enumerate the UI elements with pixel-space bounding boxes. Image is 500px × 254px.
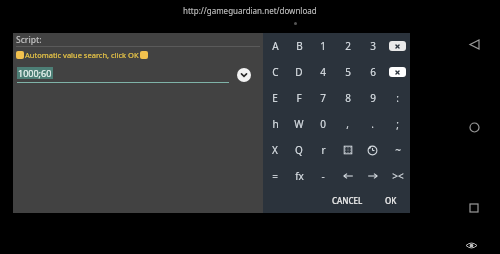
staticText: ~ bbox=[395, 143, 401, 157]
button[interactable]: fx bbox=[287, 163, 311, 189]
button[interactable] bbox=[385, 59, 410, 85]
button[interactable]: 4 bbox=[311, 59, 335, 85]
staticText: http://gameguardian.net/download bbox=[183, 5, 317, 16]
button[interactable]: Recent apps bbox=[466, 200, 482, 216]
staticText: OK bbox=[385, 195, 397, 206]
button[interactable]: = bbox=[263, 163, 287, 189]
staticText: h bbox=[272, 117, 279, 131]
staticText: = bbox=[272, 169, 278, 183]
staticText: - bbox=[321, 169, 325, 183]
button[interactable] bbox=[335, 163, 360, 189]
button[interactable]: 0 bbox=[311, 111, 335, 137]
staticText: fx bbox=[295, 169, 304, 183]
button[interactable]: 2 bbox=[335, 33, 360, 59]
button[interactable]: , bbox=[335, 111, 360, 137]
staticText: A bbox=[272, 39, 279, 53]
staticText: 2 bbox=[345, 39, 351, 53]
button[interactable]: Home bbox=[466, 119, 482, 135]
staticText: F bbox=[296, 91, 302, 105]
button[interactable]: W bbox=[287, 111, 311, 137]
button[interactable]: 3 bbox=[360, 33, 385, 59]
button[interactable]: 7 bbox=[311, 85, 335, 111]
button[interactable] bbox=[360, 163, 385, 189]
staticText: B bbox=[296, 39, 303, 53]
button[interactable]: B bbox=[287, 33, 311, 59]
button[interactable]: >< bbox=[385, 163, 410, 189]
button[interactable]: 6 bbox=[360, 59, 385, 85]
staticText: Script: bbox=[16, 34, 42, 46]
button[interactable]: Back bbox=[466, 36, 482, 52]
button[interactable]: . bbox=[360, 111, 385, 137]
button[interactable]: E bbox=[263, 85, 287, 111]
button[interactable] bbox=[360, 137, 385, 163]
button[interactable] bbox=[385, 33, 410, 59]
button[interactable]: A bbox=[263, 33, 287, 59]
button[interactable]: F bbox=[287, 85, 311, 111]
staticText: C bbox=[272, 65, 279, 79]
button[interactable]: : bbox=[385, 85, 410, 111]
button[interactable]: h bbox=[263, 111, 287, 137]
button[interactable]: ~ bbox=[385, 137, 410, 163]
button[interactable]: CANCEL bbox=[325, 191, 370, 210]
staticText: CANCEL bbox=[332, 195, 363, 206]
staticText: 1000;60 bbox=[18, 67, 52, 79]
button[interactable]: Show overlay bbox=[464, 238, 478, 252]
staticText: r bbox=[321, 143, 326, 157]
button[interactable]: Show history bbox=[237, 68, 251, 82]
staticText: E bbox=[272, 91, 278, 105]
button[interactable]: 8 bbox=[335, 85, 360, 111]
staticText: D bbox=[295, 65, 303, 79]
button[interactable]: D bbox=[287, 59, 311, 85]
button[interactable]: - bbox=[311, 163, 335, 189]
staticText: , bbox=[346, 117, 349, 131]
staticText: : bbox=[396, 91, 399, 105]
staticText: 3 bbox=[370, 39, 376, 53]
staticText: 7 bbox=[320, 91, 326, 105]
staticText: 0 bbox=[320, 117, 326, 131]
staticText: ; bbox=[396, 117, 399, 131]
staticText: Q bbox=[295, 143, 303, 157]
staticText: 5 bbox=[345, 65, 351, 79]
button[interactable] bbox=[335, 137, 360, 163]
staticText: . bbox=[371, 117, 374, 131]
staticText: 1 bbox=[320, 39, 326, 53]
button[interactable]: r bbox=[311, 137, 335, 163]
staticText: 8 bbox=[345, 91, 351, 105]
staticText: >< bbox=[392, 169, 404, 183]
staticText: X bbox=[272, 143, 278, 157]
staticText: Automatic value search, click OK bbox=[25, 50, 139, 60]
button[interactable]: 9 bbox=[360, 85, 385, 111]
button[interactable]: Q bbox=[287, 137, 311, 163]
staticText: 6 bbox=[370, 65, 376, 79]
button[interactable]: 5 bbox=[335, 59, 360, 85]
button[interactable]: C bbox=[263, 59, 287, 85]
button[interactable]: OK bbox=[378, 191, 404, 210]
staticText: W bbox=[294, 117, 304, 131]
button[interactable]: X bbox=[263, 137, 287, 163]
staticText: 9 bbox=[370, 91, 376, 105]
button[interactable]: 1 bbox=[311, 33, 335, 59]
staticText: 4 bbox=[320, 65, 326, 79]
button[interactable]: ; bbox=[385, 111, 410, 137]
